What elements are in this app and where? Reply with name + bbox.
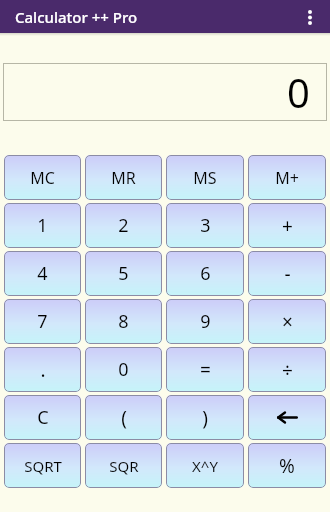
button[interactable]: M+: [248, 155, 326, 200]
staticText: 4: [37, 261, 48, 286]
button[interactable]: 7: [4, 299, 81, 344]
staticText: MS: [193, 167, 217, 189]
button[interactable]: C: [4, 395, 81, 440]
staticText: C: [37, 405, 49, 430]
button[interactable]: 6: [166, 251, 244, 296]
button[interactable]: %: [248, 443, 326, 488]
staticText: ×: [282, 309, 293, 335]
staticText: Calculator ++ Pro: [15, 7, 138, 27]
button[interactable]: 9: [166, 299, 244, 344]
staticText: MR: [111, 167, 136, 189]
staticText: 6: [200, 261, 211, 286]
staticText: 2: [118, 213, 129, 238]
staticText: 9: [200, 309, 211, 334]
staticText: =: [200, 357, 211, 383]
button[interactable]: 5: [85, 251, 162, 296]
button[interactable]: (: [85, 395, 162, 440]
staticText: %: [279, 453, 295, 479]
button[interactable]: +: [248, 203, 326, 248]
button[interactable]: 2: [85, 203, 162, 248]
button[interactable]: MR: [85, 155, 162, 200]
button[interactable]: ÷: [248, 347, 326, 392]
staticText: SQRT: [24, 456, 62, 476]
staticText: M+: [275, 167, 299, 189]
button[interactable]: Backspace: [248, 395, 326, 440]
button[interactable]: MC: [4, 155, 81, 200]
button[interactable]: ): [166, 395, 244, 440]
staticText: 1: [37, 213, 48, 238]
staticText: 0: [287, 65, 310, 119]
staticText: ): [202, 405, 208, 431]
button[interactable]: SQRT: [4, 443, 81, 488]
button[interactable]: More options: [297, 4, 323, 30]
button[interactable]: 4: [4, 251, 81, 296]
button[interactable]: =: [166, 347, 244, 392]
button[interactable]: 8: [85, 299, 162, 344]
button[interactable]: 1: [4, 203, 81, 248]
staticText: 5: [118, 261, 129, 286]
staticText: SQR: [109, 456, 139, 476]
staticText: +: [282, 213, 293, 239]
staticText: (: [121, 405, 127, 431]
button[interactable]: MS: [166, 155, 244, 200]
staticText: .: [40, 357, 46, 383]
staticText: ÷: [282, 357, 293, 383]
button[interactable]: 3: [166, 203, 244, 248]
button[interactable]: X^Y: [166, 443, 244, 488]
button[interactable]: SQR: [85, 443, 162, 488]
staticText: 7: [37, 309, 48, 334]
staticText: 3: [200, 213, 211, 238]
staticText: 8: [118, 309, 129, 334]
button[interactable]: 0: [85, 347, 162, 392]
button[interactable]: -: [248, 251, 326, 296]
button[interactable]: ×: [248, 299, 326, 344]
staticText: X^Y: [192, 456, 218, 476]
staticText: -: [284, 261, 291, 287]
staticText: 0: [118, 357, 129, 382]
staticText: MC: [30, 167, 55, 189]
button[interactable]: .: [4, 347, 81, 392]
